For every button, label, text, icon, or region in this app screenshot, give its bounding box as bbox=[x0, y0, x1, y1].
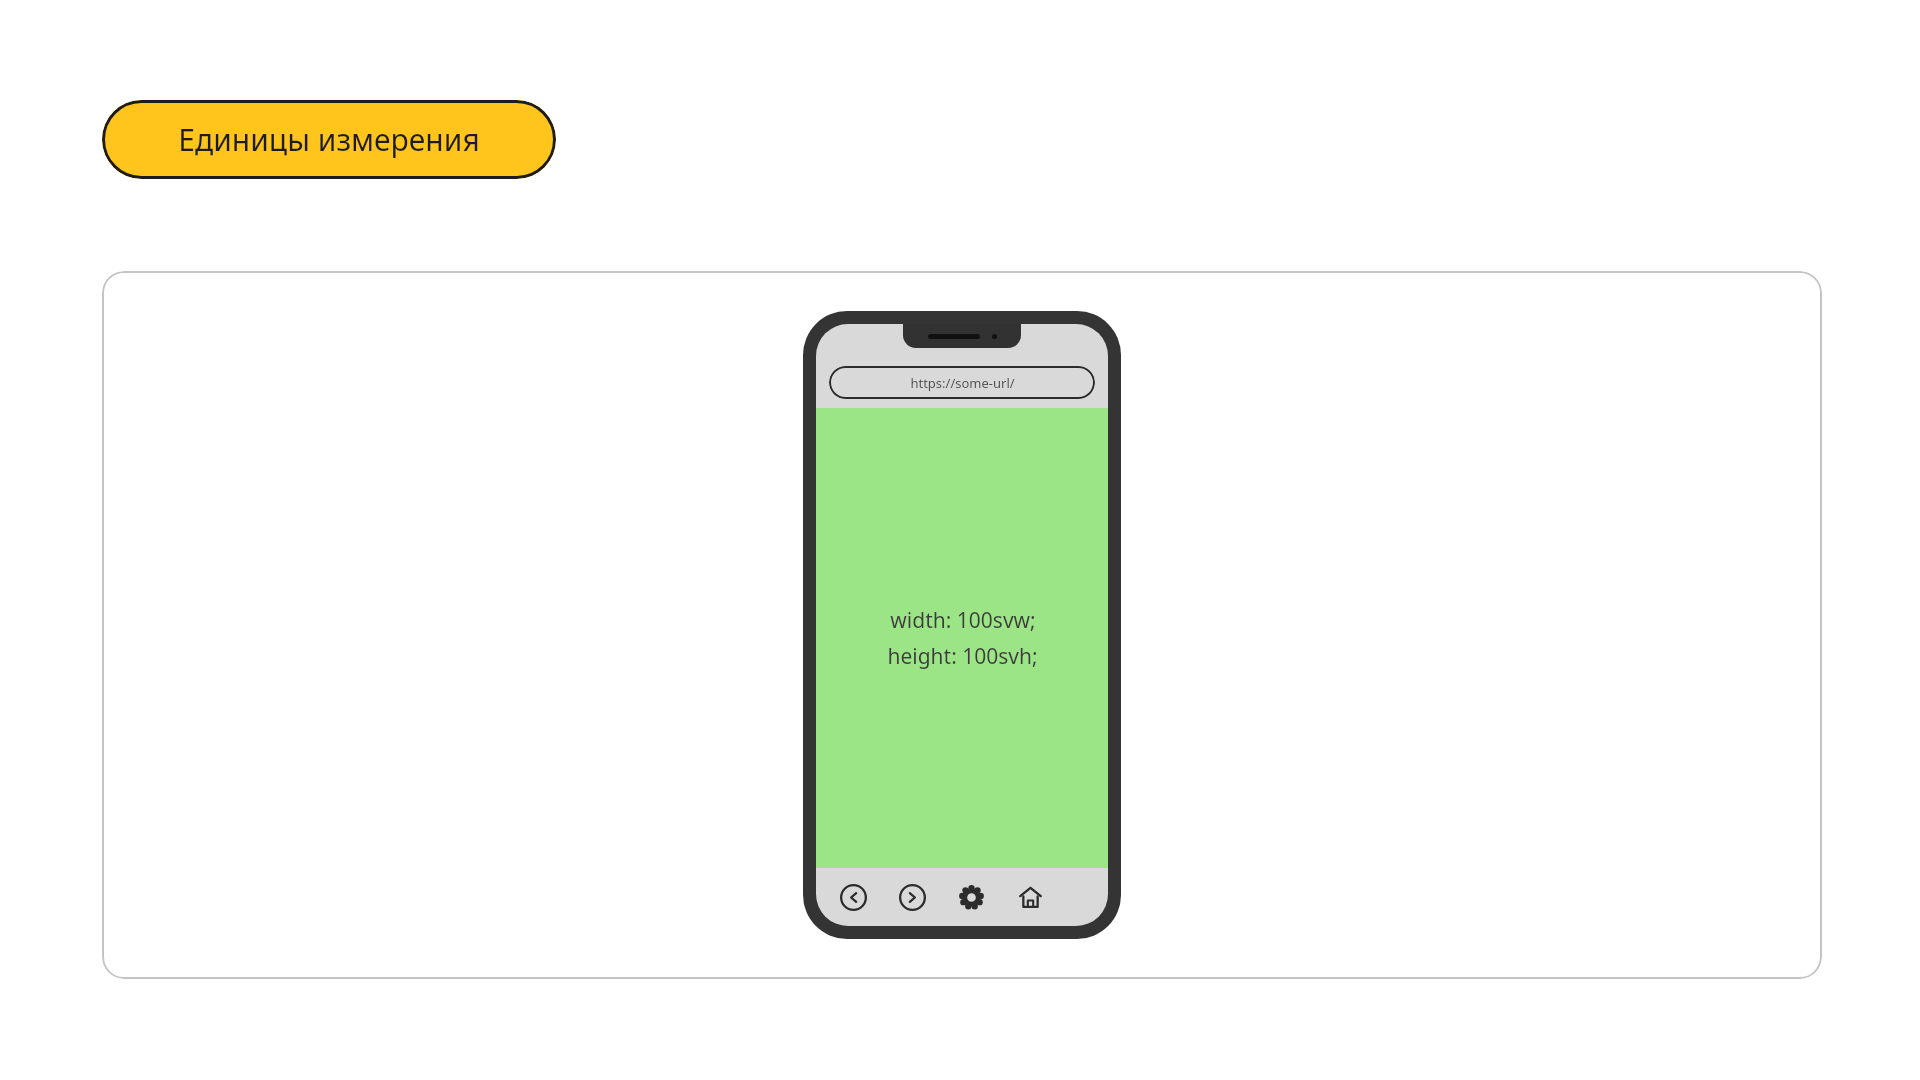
staticText: width: 100svw; bbox=[890, 606, 1036, 635]
staticText: Единицы измерения bbox=[178, 119, 480, 160]
button[interactable]: https://some-url/ bbox=[829, 366, 1095, 399]
button[interactable]: Forward bbox=[893, 878, 931, 916]
button[interactable]: Единицы измерения bbox=[102, 100, 556, 179]
button[interactable]: Settings bbox=[952, 878, 990, 916]
staticText: https://some-url/ bbox=[910, 374, 1015, 392]
button[interactable]: Back bbox=[834, 878, 872, 916]
staticText: height: 100svh; bbox=[887, 642, 1038, 671]
button[interactable]: Home bbox=[1011, 878, 1049, 916]
